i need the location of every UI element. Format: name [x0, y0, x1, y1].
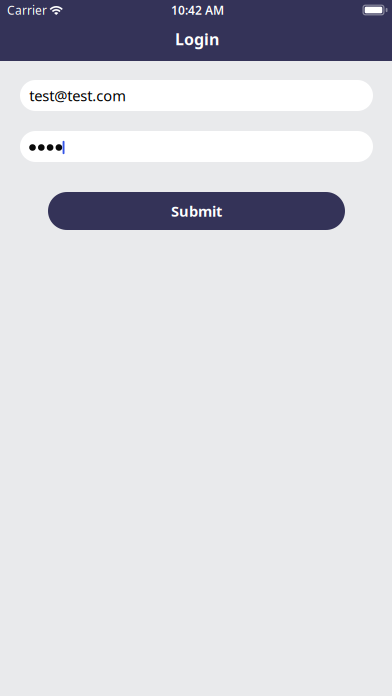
- staticText: Login: [175, 28, 219, 50]
- button[interactable]: Submit: [47, 192, 344, 230]
- staticText: 10:42 AM: [171, 2, 224, 18]
- staticText: Submit: [171, 201, 222, 221]
- button[interactable]: Password: [19, 131, 372, 162]
- staticText: Carrier: [7, 2, 47, 18]
- staticText: test@test.com: [29, 86, 126, 105]
- button[interactable]: test@test.com: [19, 80, 372, 111]
